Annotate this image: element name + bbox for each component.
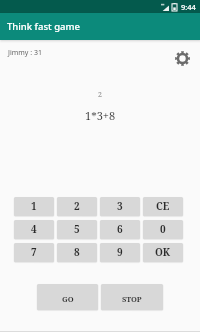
staticText: 9 — [117, 245, 123, 259]
staticText: Jimmy : 31 — [8, 48, 42, 58]
button[interactable]: OK — [143, 243, 183, 262]
staticText: 8 — [74, 245, 80, 259]
staticText: 4 — [31, 222, 37, 236]
button[interactable]: 5 — [57, 220, 97, 239]
button[interactable]: CE — [143, 197, 183, 216]
staticText: 6 — [117, 222, 123, 236]
button[interactable]: 2 — [57, 197, 97, 216]
button[interactable]: 7 — [14, 243, 54, 262]
staticText: 5 — [74, 222, 80, 236]
staticText: 1*3+8 — [85, 108, 116, 123]
button[interactable]: Settings — [171, 47, 193, 69]
staticText: CE — [156, 199, 170, 213]
staticText: 1 — [31, 199, 37, 213]
staticText: GO — [62, 294, 74, 304]
staticText: 2 — [74, 199, 80, 213]
staticText: 0 — [160, 222, 166, 236]
staticText: 9:44 — [181, 2, 196, 12]
button[interactable]: 8 — [57, 243, 97, 262]
staticText: 2 — [98, 90, 102, 100]
button[interactable]: 1 — [14, 197, 54, 216]
button[interactable]: GO — [37, 284, 98, 310]
button[interactable]: STOP — [101, 284, 163, 310]
button[interactable]: 4 — [14, 220, 54, 239]
staticText: Think fast game — [7, 20, 80, 33]
button[interactable]: 6 — [100, 220, 140, 239]
staticText: OK — [155, 245, 171, 259]
button[interactable]: 0 — [143, 220, 183, 239]
staticText: 7 — [31, 245, 37, 259]
staticText: 3 — [117, 199, 123, 213]
staticText: STOP — [122, 294, 142, 304]
button[interactable]: 9 — [100, 243, 140, 262]
button[interactable]: 3 — [100, 197, 140, 216]
